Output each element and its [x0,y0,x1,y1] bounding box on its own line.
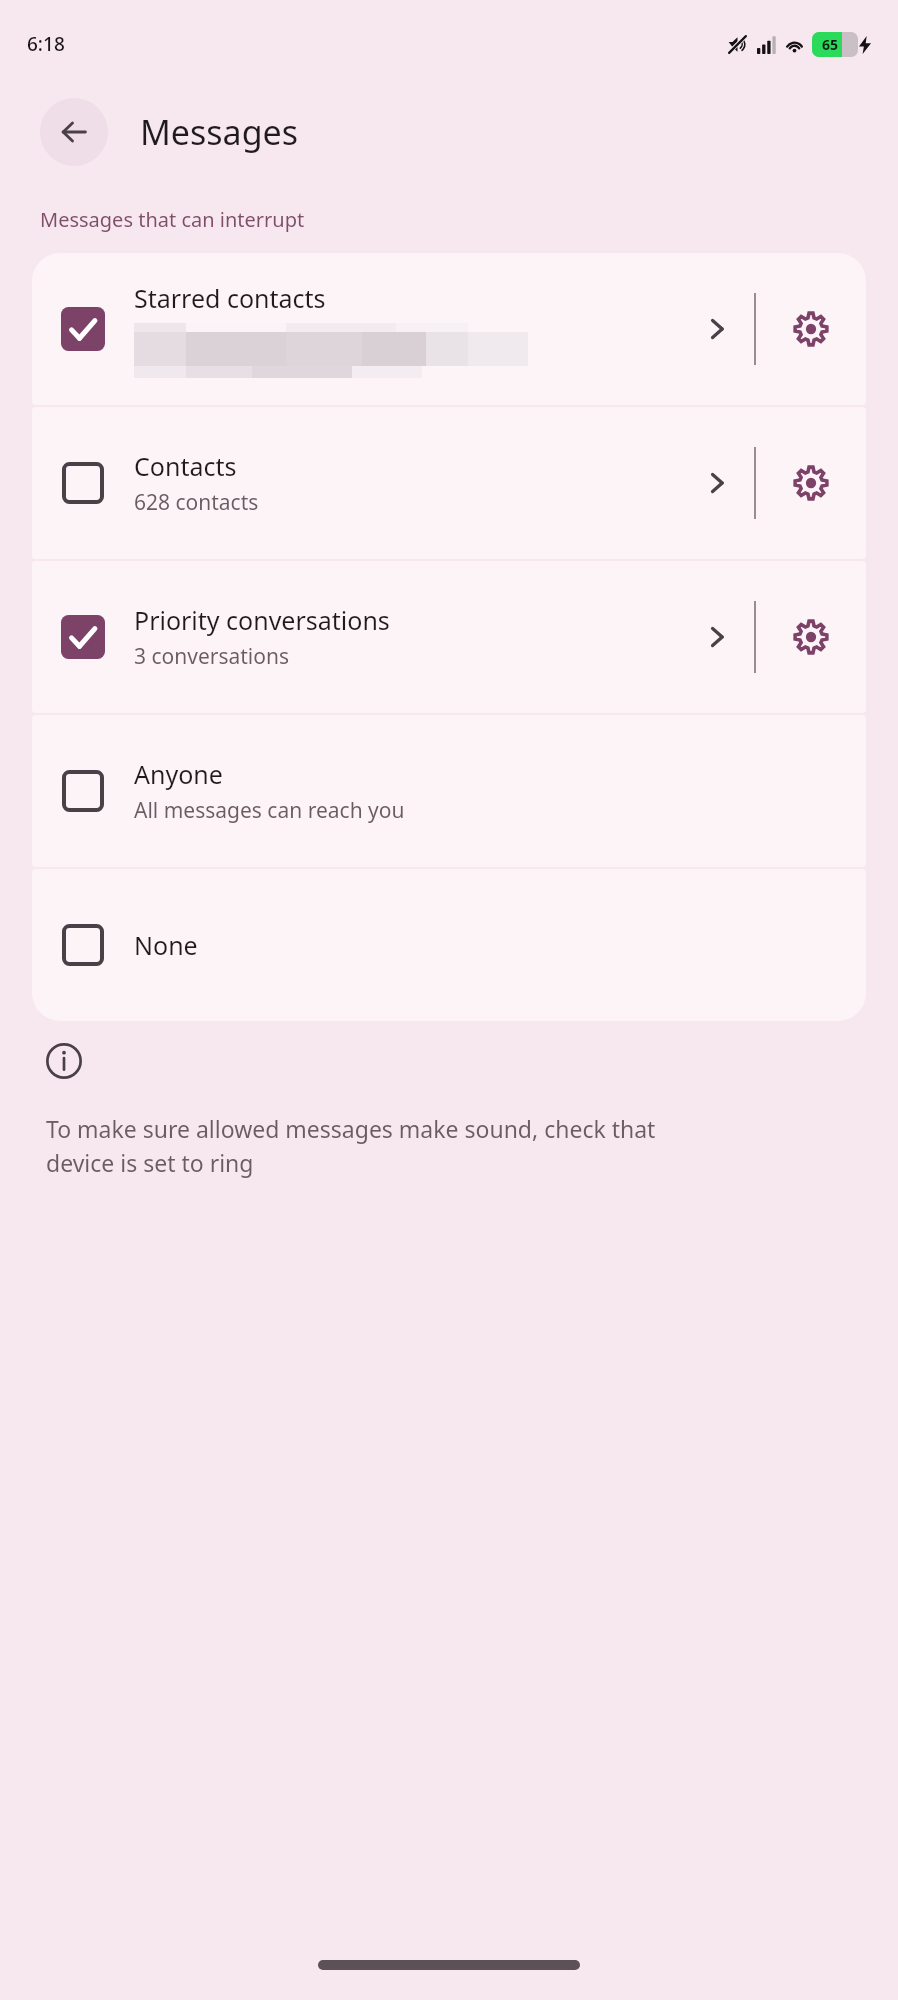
button[interactable]: Unchecked [60,768,106,814]
button[interactable]: Priority conversations settings [756,561,866,713]
staticText: All messages can reach you [134,796,405,825]
staticText: To make sure allowed messages make sound… [46,1113,656,1178]
button[interactable]: Open Starred contacts [680,253,754,405]
button[interactable]: Unchecked [32,715,866,867]
staticText: Messages [140,109,299,155]
button[interactable]: Open Contacts [680,407,754,559]
staticText: Anyone [134,757,223,791]
staticText: Contacts [134,449,237,483]
button[interactable]: Contacts settings [756,407,866,559]
button[interactable]: Open Priority conversations [680,561,754,713]
button[interactable]: Checked [32,561,866,713]
button[interactable]: Checked [60,614,106,660]
button[interactable]: Checked [60,306,106,352]
button[interactable]: Checked [32,253,866,405]
button[interactable]: Back [40,98,108,166]
button[interactable]: Unchecked [60,460,106,506]
staticText: 628 contacts [134,488,259,517]
staticText: 65 [822,35,839,54]
staticText: None [134,928,198,962]
button[interactable]: Unchecked [60,922,106,968]
staticText: Starred contacts [134,281,326,315]
button[interactable]: Unchecked [32,407,866,559]
button[interactable]: Starred contacts settings [756,253,866,405]
button[interactable]: Unchecked [32,869,866,1021]
staticText: 6:18 [27,31,65,57]
staticText: Messages that can interrupt [40,206,305,233]
staticText: Priority conversations [134,603,390,637]
staticText: 3 conversations [134,642,290,671]
